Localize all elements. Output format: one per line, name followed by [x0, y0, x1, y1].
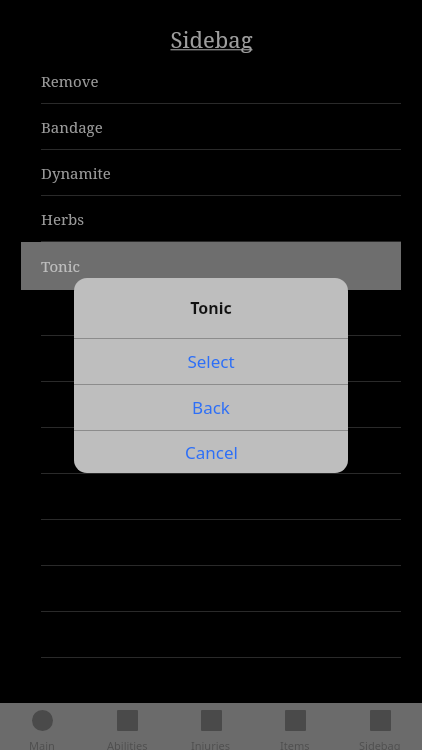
button[interactable]: Abilities — [85, 703, 169, 750]
button[interactable]: Sidebag — [338, 703, 422, 750]
staticText: Abilities — [107, 738, 148, 750]
button[interactable]: Select — [74, 339, 348, 384]
button[interactable]: Remove — [0, 58, 422, 104]
button[interactable]: Main — [0, 703, 84, 750]
button[interactable]: Back — [74, 385, 348, 430]
staticText: Select — [187, 350, 235, 373]
button[interactable]: Cancel — [74, 431, 348, 473]
button[interactable] — [0, 382, 422, 428]
button[interactable] — [0, 336, 422, 382]
staticText: Dynamite — [41, 163, 111, 183]
staticText: Remove — [41, 71, 99, 91]
staticText: Injuries — [191, 738, 231, 750]
button[interactable]: Herbs — [0, 196, 422, 242]
staticText: Cancel — [185, 441, 238, 464]
staticText: Sidebag — [359, 738, 401, 750]
other: Main — [32, 710, 53, 731]
button[interactable]: Injuries — [169, 703, 253, 750]
staticText: Back — [192, 396, 230, 419]
staticText: Bandage — [41, 117, 103, 137]
staticText: Items — [280, 738, 310, 750]
button[interactable] — [0, 474, 422, 520]
button[interactable]: Bandage — [0, 104, 422, 150]
staticText: Main — [29, 738, 55, 750]
button[interactable] — [0, 520, 422, 566]
button[interactable] — [0, 428, 422, 474]
staticText: Herbs — [41, 209, 84, 229]
button[interactable] — [0, 290, 422, 336]
staticText: Tonic — [190, 297, 232, 319]
staticText: Sidebag — [170, 24, 253, 54]
button[interactable] — [0, 612, 422, 658]
button[interactable]: Tonic — [21, 242, 401, 290]
button[interactable] — [0, 658, 422, 704]
button[interactable]: Items — [253, 703, 337, 750]
button[interactable]: Dynamite — [0, 150, 422, 196]
button[interactable] — [0, 566, 422, 612]
staticText: Tonic — [41, 256, 80, 276]
